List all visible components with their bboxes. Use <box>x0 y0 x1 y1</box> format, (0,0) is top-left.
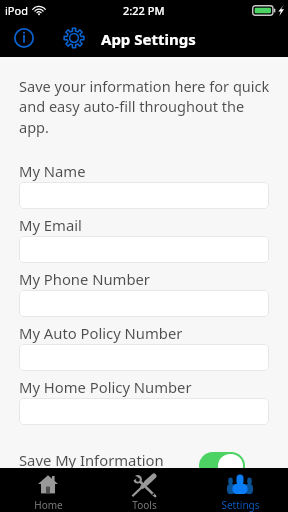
staticText: My Phone Number <box>19 269 150 289</box>
button[interactable]: Tools <box>96 468 192 512</box>
button[interactable] <box>19 290 269 317</box>
staticText: My Home Policy Number <box>19 377 192 397</box>
staticText: Save My Information <box>19 450 164 470</box>
staticText: App Settings <box>101 29 196 49</box>
button[interactable]: Save My Information toggle <box>199 452 245 480</box>
button[interactable] <box>19 398 269 425</box>
button[interactable] <box>19 236 269 263</box>
staticText: 2:22 PM <box>123 3 165 18</box>
staticText: My Auto Policy Number <box>19 323 183 343</box>
button[interactable] <box>19 344 269 371</box>
button[interactable] <box>19 182 269 209</box>
button[interactable]: Settings <box>192 468 288 512</box>
staticText: iPod <box>5 3 28 18</box>
staticText: Home <box>34 498 63 512</box>
staticText: My Email <box>19 215 82 235</box>
staticText: Save your information here for quick and… <box>19 76 270 137</box>
staticText: Tools <box>132 498 157 512</box>
staticText: Settings <box>221 498 260 512</box>
button[interactable]: Home <box>0 468 96 512</box>
button[interactable]: Info <box>9 23 39 53</box>
staticText: My Name <box>19 161 86 181</box>
button[interactable]: Settings <box>59 23 89 53</box>
